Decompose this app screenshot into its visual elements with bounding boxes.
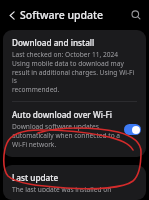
staticText: Software update	[20, 8, 104, 22]
staticText: Download and install	[12, 37, 95, 48]
staticText: Using mobile data to download may	[12, 59, 124, 68]
button[interactable]: Auto download over Wi-Fi	[3, 102, 146, 157]
staticText: Wi-Fi network.	[12, 140, 57, 149]
staticText: Download software updates	[12, 122, 99, 131]
button[interactable]: Auto download over Wi-Fi toggle, on	[124, 124, 141, 135]
button[interactable]: Download and install	[3, 30, 146, 101]
staticText: Last update	[12, 172, 59, 183]
staticText: result in additional charges. Using Wi-F…	[12, 68, 137, 85]
staticText: The last update was installed on October…	[12, 185, 137, 192]
button[interactable]: Search	[127, 6, 145, 24]
button[interactable]: Last update	[3, 165, 146, 200]
staticText: recommended.	[12, 85, 60, 94]
button[interactable]: Back	[4, 7, 20, 23]
staticText: Auto download over Wi-Fi	[12, 109, 113, 120]
staticText: Last checked on: October 11, 2024	[12, 50, 119, 59]
staticText: automatically when connected to a	[12, 131, 121, 140]
